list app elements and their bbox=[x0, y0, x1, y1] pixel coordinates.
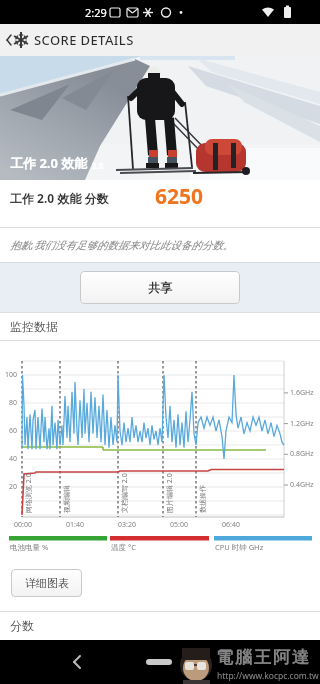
staticText: SCORE DETAILS bbox=[34, 31, 134, 49]
staticText: 2:29 bbox=[85, 5, 107, 20]
staticText: 60 bbox=[9, 426, 18, 436]
staticText: 详细图表 bbox=[25, 576, 69, 590]
staticText: 00:00 bbox=[14, 520, 32, 530]
staticText: 0.4GHz bbox=[290, 480, 314, 490]
button[interactable]: SCORE DETAILS bbox=[0, 24, 134, 56]
button[interactable] bbox=[66, 648, 94, 676]
button[interactable] bbox=[140, 648, 178, 684]
staticText: 05:00 bbox=[170, 520, 188, 530]
staticText: 监控数据 bbox=[10, 319, 58, 334]
staticText: 100 bbox=[5, 370, 18, 380]
staticText: 01:40 bbox=[66, 520, 84, 530]
staticText: 06:40 bbox=[222, 520, 240, 530]
staticText: 视频编辑 bbox=[62, 485, 71, 513]
staticText: 工作 2.0 效能 分数 bbox=[10, 190, 109, 206]
staticText: 2.0 bbox=[92, 160, 104, 171]
staticText: CPU 时钟 GHz bbox=[215, 542, 264, 552]
staticText: http://www.kocpc.com.tw bbox=[217, 670, 319, 682]
staticText: 20 bbox=[9, 482, 18, 492]
staticText: 工作 2.0 效能 bbox=[10, 154, 88, 172]
staticText: 1.6GHz bbox=[290, 388, 314, 398]
staticText: 03:20 bbox=[118, 520, 136, 530]
staticText: 6250 bbox=[155, 182, 204, 211]
staticText: 温度 °C bbox=[111, 542, 136, 552]
staticText: 文档编写 2.0 bbox=[120, 473, 130, 513]
staticText: 数据操作 bbox=[198, 485, 207, 513]
staticText: 共享 bbox=[148, 280, 172, 295]
button[interactable]: 共享 bbox=[80, 271, 240, 304]
staticText: 图片编辑 2.0 bbox=[165, 473, 175, 513]
staticText: 0.8GHz bbox=[290, 449, 314, 459]
staticText: 80 bbox=[9, 398, 18, 408]
staticText: 电池电量 % bbox=[10, 542, 49, 552]
staticText: 网络浏览 2.0 bbox=[24, 473, 34, 513]
staticText: 1.2GHz bbox=[290, 419, 314, 429]
staticText: 40 bbox=[9, 454, 18, 464]
staticText: 電腦王阿達 bbox=[215, 647, 310, 668]
button[interactable]: 详细图表 bbox=[11, 569, 82, 597]
staticText: 抱歉,我们没有足够的数据来对比此设备的分数。 bbox=[10, 238, 234, 252]
staticText: 分数 bbox=[10, 618, 34, 633]
